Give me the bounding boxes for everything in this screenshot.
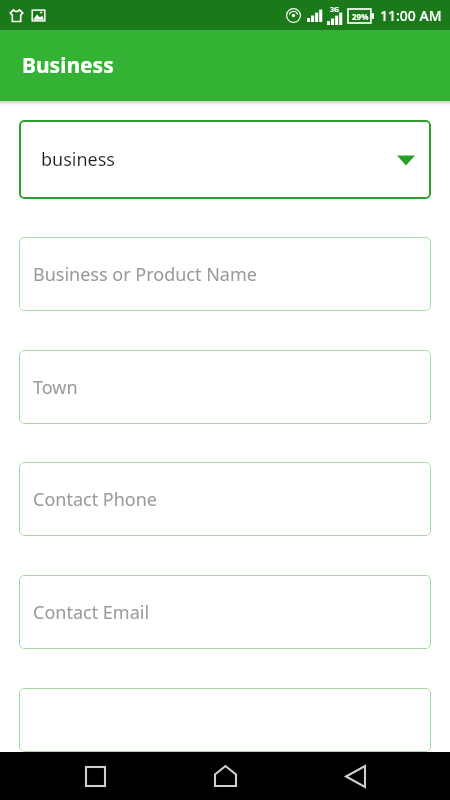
button[interactable]: Contact Email [19, 575, 431, 649]
staticText: 11:00 AM [380, 6, 442, 25]
button[interactable]: Back [320, 752, 390, 800]
button[interactable]: Recent apps [60, 752, 130, 800]
button[interactable]: Town [19, 350, 431, 424]
button[interactable]: business [19, 120, 431, 199]
staticText: 3G [330, 5, 340, 15]
staticText: 29% [352, 11, 369, 22]
staticText: Business [22, 51, 114, 80]
button[interactable] [19, 688, 431, 752]
staticText: Contact Phone [33, 487, 157, 512]
staticText: Contact Email [33, 600, 150, 625]
button[interactable]: Home [190, 752, 260, 800]
staticText: business [41, 147, 397, 172]
button[interactable]: Contact Phone [19, 462, 431, 536]
staticText: Town [33, 375, 78, 400]
button[interactable]: Business or Product Name [19, 237, 431, 311]
staticText: Business or Product Name [33, 262, 257, 287]
